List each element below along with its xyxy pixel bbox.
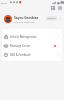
- other: Open profile: [59, 17, 62, 20]
- staticText: +62 812 3456 789: [14, 20, 35, 23]
- button[interactable]: Scan code: [50, 5, 56, 11]
- staticText: Message Center: [10, 44, 31, 48]
- button[interactable]: Message Center: [2, 41, 62, 50]
- staticText: Sayru Gembira: [14, 15, 39, 19]
- button[interactable]: FAQ & Feedback: [2, 50, 62, 59]
- button[interactable]: Settings: [57, 5, 63, 11]
- staticText: 09:41: [1, 1, 8, 4]
- button[interactable]: Vehicle Management: [2, 32, 62, 41]
- staticText: Member: [47, 17, 56, 20]
- staticText: FAQ & Feedback: [10, 53, 31, 57]
- staticText: Vehicle Management: [10, 35, 37, 39]
- button[interactable]: Sayru Gembira: [0, 13, 64, 24]
